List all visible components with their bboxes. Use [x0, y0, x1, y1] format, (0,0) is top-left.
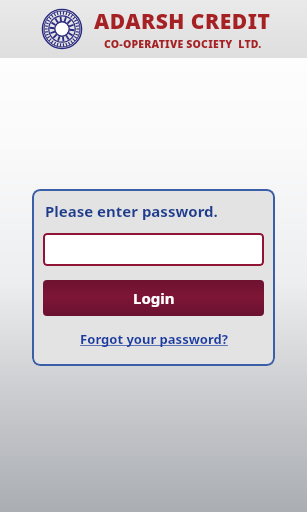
- staticText: Please enter password.: [45, 201, 218, 221]
- staticText: CO-OPERATIVE SOCIETY LTD.: [104, 37, 262, 51]
- button[interactable]: Forgot your password?: [74, 328, 234, 350]
- staticText: Forgot your password?: [80, 330, 228, 348]
- button[interactable]: Login: [43, 280, 264, 316]
- button[interactable]: [43, 233, 264, 266]
- staticText: ADARSH CREDIT: [94, 7, 271, 36]
- staticText: Login: [133, 288, 175, 308]
